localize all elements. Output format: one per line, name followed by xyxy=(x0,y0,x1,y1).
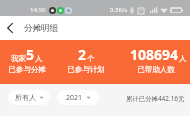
staticText: 已参与分摊 xyxy=(8,65,46,74)
staticText: 我家 xyxy=(11,54,26,63)
staticText: 14:50 xyxy=(30,6,46,14)
staticText: 人 xyxy=(35,54,43,63)
staticText: 分摊明细 xyxy=(24,23,58,34)
button[interactable]: 108694 xyxy=(130,40,182,84)
staticText: 个 xyxy=(87,54,95,63)
button[interactable]: 我家 xyxy=(1,40,53,84)
button[interactable]: 所有人 xyxy=(8,90,50,105)
staticText: 2021 xyxy=(66,93,83,103)
staticText: 累计已分摊442.16元 xyxy=(126,94,185,103)
staticText: 人 xyxy=(179,54,182,63)
staticText: 已帮助人数 xyxy=(137,65,175,74)
button[interactable]: Back xyxy=(2,20,18,36)
staticText: 2 xyxy=(78,45,87,64)
button[interactable]: 2021 xyxy=(57,90,99,105)
staticText: 5 xyxy=(26,45,35,64)
staticText: 0.3K/s xyxy=(110,6,128,14)
staticText: 108694 xyxy=(130,45,179,64)
staticText: 所有人 xyxy=(15,93,36,102)
button[interactable]: 2 xyxy=(60,40,112,84)
staticText: 已参与计划 xyxy=(67,65,105,74)
